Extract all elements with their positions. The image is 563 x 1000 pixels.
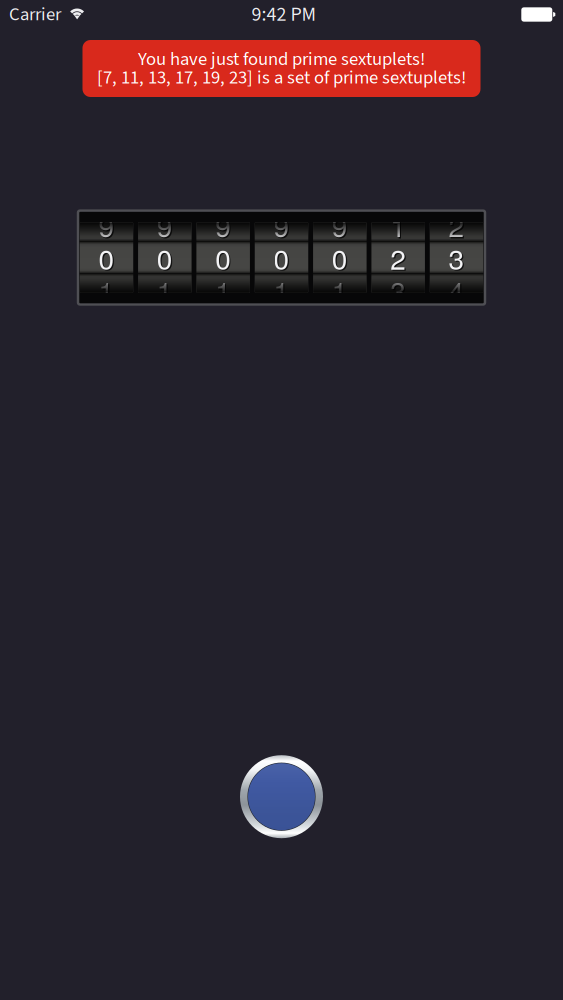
staticText: 1 xyxy=(391,206,407,246)
staticText: 3 xyxy=(391,271,407,311)
staticText: 2 xyxy=(391,239,407,279)
staticText: 9 xyxy=(100,206,116,246)
staticText: 1 xyxy=(100,271,116,311)
staticText: 9 xyxy=(98,205,114,245)
staticText: 1 xyxy=(275,271,291,311)
staticText: 0 xyxy=(100,239,116,279)
staticText: 9 xyxy=(215,205,231,245)
staticText: 3 xyxy=(448,237,464,278)
staticText: 2 xyxy=(390,237,406,278)
staticText: 0 xyxy=(157,237,173,278)
staticText: 3 xyxy=(390,270,406,310)
staticText: 3 xyxy=(450,239,466,279)
staticText: 1 xyxy=(273,270,289,310)
staticText: 2 xyxy=(450,206,466,246)
staticText: 0 xyxy=(158,239,174,279)
button[interactable]: Count xyxy=(240,755,323,838)
staticText: 0 xyxy=(216,239,232,279)
staticText: 1 xyxy=(390,205,406,245)
staticText: You have just found prime sextuplets! xyxy=(138,46,425,72)
staticText: 4 xyxy=(450,271,466,311)
staticText: 4 xyxy=(448,270,464,310)
staticText: 1 xyxy=(333,271,349,311)
staticText: 1 xyxy=(216,271,232,311)
staticText: 9 xyxy=(157,205,173,245)
staticText: 0 xyxy=(333,239,349,279)
staticText: 1 xyxy=(157,270,173,310)
staticText: 9 xyxy=(333,206,349,246)
staticText: 0 xyxy=(273,237,289,278)
staticText: 1 xyxy=(98,270,114,310)
staticText: 2 xyxy=(448,205,464,245)
staticText: 9 xyxy=(273,205,289,245)
staticText: 9 xyxy=(332,205,348,245)
staticText: 1 xyxy=(158,271,174,311)
staticText: 1 xyxy=(215,270,231,310)
staticText: [7, 11, 13, 17, 19, 23] is a set of prim… xyxy=(97,64,466,91)
staticText: 9 xyxy=(216,206,232,246)
staticText: Carrier xyxy=(9,1,61,28)
staticText: 1 xyxy=(332,270,348,310)
staticText: 0 xyxy=(332,237,348,278)
staticText: 9 xyxy=(275,206,291,246)
staticText: 0 xyxy=(98,237,114,278)
staticText: 0 xyxy=(215,237,231,278)
staticText: 9 xyxy=(158,206,174,246)
staticText: 9:42 PM xyxy=(251,0,316,29)
staticText: 0 xyxy=(275,239,291,279)
